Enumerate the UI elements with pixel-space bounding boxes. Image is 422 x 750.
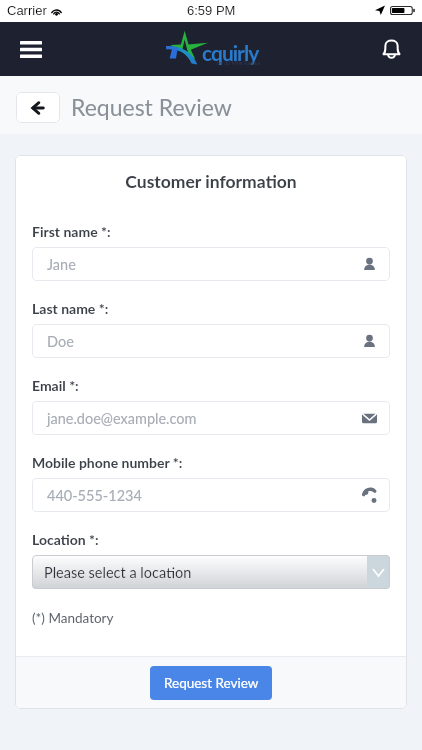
- button[interactable]: jane.doe@example.com: [32, 401, 390, 435]
- staticText: cquirly: [202, 40, 259, 65]
- staticText: Jane: [47, 256, 76, 273]
- staticText: Doe: [47, 333, 74, 350]
- button[interactable]: Doe: [32, 324, 390, 358]
- staticText: Email *:: [32, 377, 79, 394]
- staticText: Request Review: [71, 93, 232, 121]
- staticText: (*) Mandatory: [32, 610, 114, 626]
- button[interactable]: Open navigation menu: [13, 31, 49, 67]
- button[interactable]: Jane: [32, 247, 390, 281]
- staticText: Location *:: [32, 531, 99, 548]
- staticText: Last name *:: [32, 300, 109, 317]
- staticText: 440-555-1234: [47, 487, 142, 504]
- staticText: Request Review: [164, 675, 259, 691]
- staticText: 6:59 PM: [187, 3, 236, 18]
- button[interactable]: Back: [16, 92, 60, 123]
- button[interactable]: 440-555-1234: [32, 478, 390, 512]
- button[interactable]: Notifications: [373, 31, 409, 67]
- staticText: Please select a location: [44, 564, 192, 581]
- staticText: Carrier: [7, 3, 47, 18]
- staticText: Mobile phone number *:: [32, 454, 183, 471]
- button[interactable]: Request Review: [150, 666, 272, 700]
- staticText: jane.doe@example.com: [47, 410, 197, 427]
- button[interactable]: Please select a location: [32, 555, 390, 589]
- staticText: by 30 Mile Radius: [217, 60, 261, 67]
- staticText: Customer information: [32, 171, 390, 192]
- staticText: First name *:: [32, 223, 111, 240]
